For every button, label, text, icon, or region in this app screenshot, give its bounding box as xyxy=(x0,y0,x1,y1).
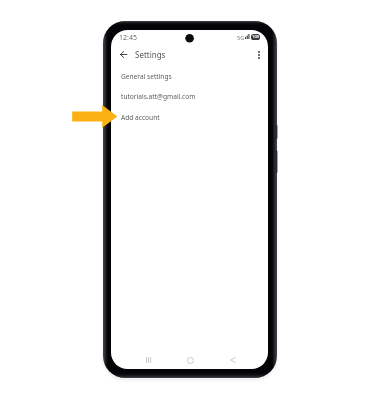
button[interactable]: Add account xyxy=(111,107,268,127)
staticText: Add account xyxy=(121,113,160,122)
staticText: General settings xyxy=(121,72,172,81)
staticText: 5G xyxy=(237,34,245,41)
button[interactable]: tutorials.att@gmail.com xyxy=(111,86,268,106)
button[interactable]: Back xyxy=(115,46,131,62)
staticText: Settings xyxy=(135,49,166,60)
button[interactable]: Back xyxy=(222,349,244,369)
button[interactable]: Settings xyxy=(135,45,167,63)
staticText: tutorials.att@gmail.com xyxy=(121,92,196,101)
button[interactable]: General settings xyxy=(111,66,268,86)
button[interactable]: Home xyxy=(179,349,201,369)
staticText: 100 xyxy=(252,34,260,40)
button[interactable]: More options xyxy=(251,47,267,63)
button[interactable]: Recent apps xyxy=(137,349,159,369)
staticText: 12:45 xyxy=(119,33,137,43)
